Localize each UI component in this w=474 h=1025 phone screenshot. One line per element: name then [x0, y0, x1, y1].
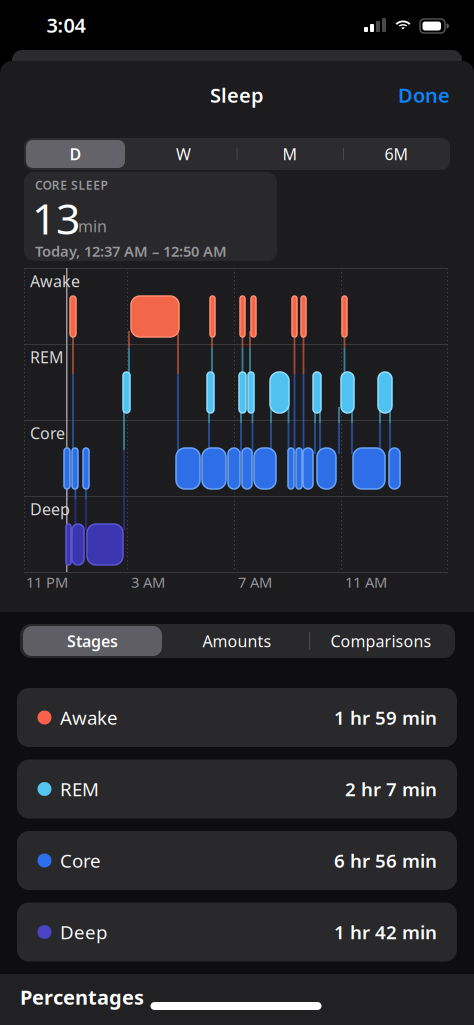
staticText: Comparisons [330, 630, 431, 652]
staticText: 2 hr 7 min [345, 777, 437, 801]
staticText: CORE SLEEP [35, 177, 108, 193]
staticText: D [69, 143, 81, 165]
staticText: 11 AM [345, 572, 387, 592]
staticText: 3:04 [46, 12, 85, 38]
staticText: Deep [30, 498, 70, 520]
staticText: Today, 12:37 AM – 12:50 AM [35, 241, 227, 261]
staticText: 6M [384, 143, 408, 165]
staticText: Sleep [210, 82, 264, 108]
staticText: Deep [60, 920, 107, 944]
staticText: min [78, 215, 107, 237]
staticText: 13 [32, 190, 80, 246]
staticText: Core [60, 848, 101, 873]
staticText: W [176, 143, 191, 165]
staticText: 6 hr 56 min [334, 848, 437, 873]
staticText: 1 hr 59 min [334, 705, 437, 730]
staticText: Amounts [202, 630, 271, 652]
staticText: Percentages [20, 984, 144, 1010]
staticText: Awake [30, 270, 80, 292]
staticText: Core [30, 422, 65, 444]
staticText: REM [30, 346, 64, 368]
staticText: 3 AM [131, 572, 165, 592]
staticText: M [282, 143, 297, 165]
staticText: Awake [60, 705, 118, 730]
staticText: 7 AM [238, 572, 272, 592]
staticText: Done [398, 82, 450, 108]
staticText: Stages [67, 630, 118, 652]
staticText: 1 hr 42 min [334, 920, 437, 944]
staticText: REM [60, 777, 99, 801]
staticText: 11 PM [26, 572, 68, 592]
